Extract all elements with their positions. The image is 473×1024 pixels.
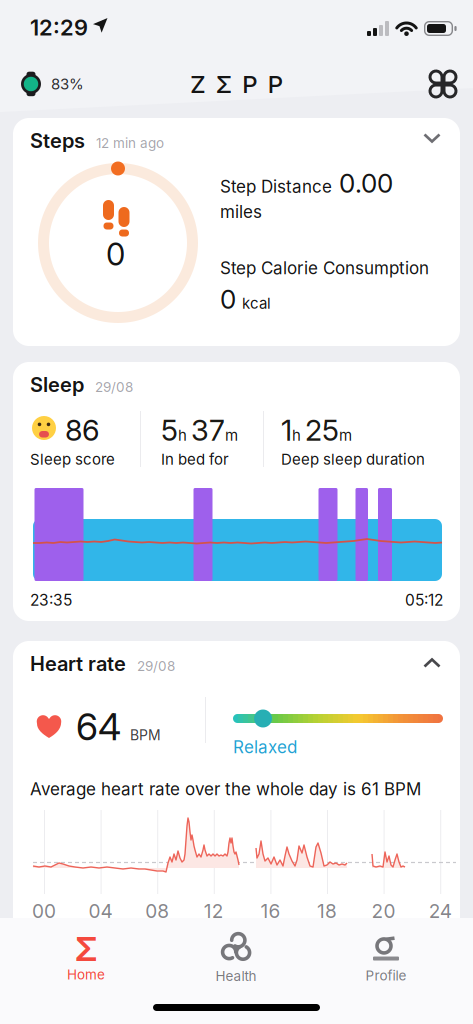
staticText: 12 min ago [96, 135, 164, 151]
staticText: Sleep [30, 373, 84, 397]
staticText: Steps [30, 129, 85, 153]
staticText: Sleep score [30, 450, 115, 468]
staticText: 83% [51, 75, 84, 93]
button[interactable]: Sleep [13, 362, 460, 621]
staticText: Health [215, 968, 256, 984]
staticText: BPM [130, 727, 161, 743]
staticText: 0 [220, 284, 236, 315]
button[interactable]: Watch battery 83% [20, 71, 84, 97]
staticText: kcal [242, 294, 271, 312]
staticText: 12 [204, 900, 224, 922]
staticText: 08 [145, 900, 169, 922]
staticText: Relaxed [233, 737, 297, 757]
staticText: 64 [76, 705, 121, 749]
staticText: 0 [106, 236, 125, 273]
staticText: Profile [365, 967, 406, 983]
staticText: Σ [75, 928, 97, 969]
staticText: 12:29 [30, 14, 88, 40]
staticText: 1h 25m [281, 413, 352, 447]
staticText: Home [67, 966, 105, 982]
staticText: 5h 37m [161, 413, 238, 447]
staticText: P [268, 70, 283, 98]
button[interactable]: Steps [13, 118, 460, 346]
staticText: Z [190, 70, 205, 98]
staticText: 24 [429, 900, 452, 922]
staticText: 00 [32, 900, 56, 922]
button[interactable]: Health [176, 929, 296, 987]
button[interactable]: Σ [26, 929, 146, 987]
staticText: 18 [317, 900, 337, 922]
staticText: Step Distance [220, 177, 332, 197]
button[interactable]: Heart rate [13, 641, 460, 1024]
staticText: Average heart rate over the whole day is… [30, 779, 421, 799]
staticText: 86 [65, 413, 100, 447]
staticText: miles [220, 202, 262, 222]
staticText: 29/08 [137, 658, 175, 674]
staticText: Deep sleep duration [281, 450, 425, 468]
staticText: 0.00 [339, 168, 393, 199]
staticText: In bed for [161, 450, 229, 468]
staticText: 05:12 [405, 591, 443, 609]
button[interactable]: Apps [430, 71, 456, 97]
staticText: 29/08 [95, 379, 133, 395]
button[interactable]: Profile [326, 929, 446, 987]
staticText: P [242, 70, 257, 98]
staticText: 23:35 [30, 591, 72, 609]
staticText: Step Calorie Consumption [220, 258, 429, 278]
staticText: Heart rate [30, 652, 126, 676]
staticText: 16 [260, 900, 280, 922]
staticText: 04 [89, 900, 113, 922]
staticText: 20 [372, 900, 396, 922]
staticText: Σ [216, 70, 232, 98]
